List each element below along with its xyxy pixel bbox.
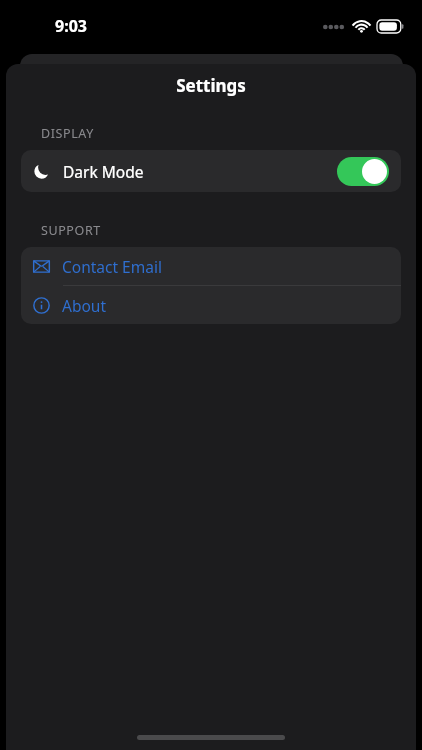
- staticText: Dark Mode: [63, 161, 144, 182]
- staticText: Settings: [6, 74, 416, 97]
- staticText: Contact Email: [62, 256, 162, 277]
- staticText: About: [62, 295, 106, 316]
- staticText: SUPPORT: [41, 222, 101, 239]
- button[interactable]: Dark Mode: [21, 150, 401, 192]
- button[interactable]: Contact Email: [21, 247, 401, 285]
- staticText: 9:03: [55, 15, 87, 37]
- button[interactable]: About: [21, 286, 401, 324]
- staticText: DISPLAY: [41, 125, 94, 142]
- button[interactable]: Dark Mode toggle, on: [337, 157, 389, 186]
